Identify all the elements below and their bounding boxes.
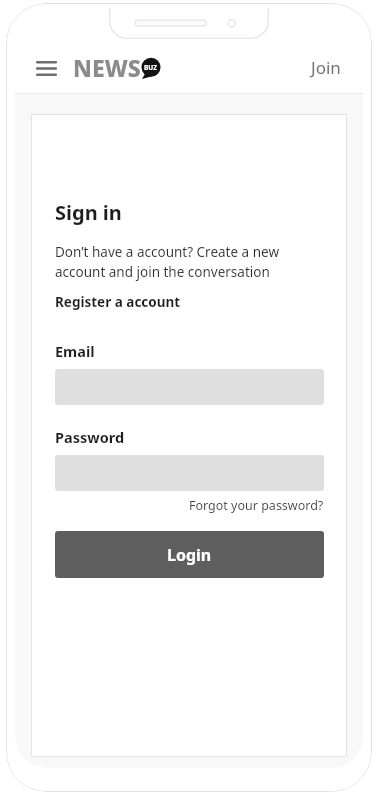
button[interactable]: Register a account xyxy=(55,293,181,311)
button[interactable]: Forgot your password? xyxy=(189,497,324,514)
staticText: Forgot your password? xyxy=(189,497,324,514)
staticText: Login xyxy=(167,544,212,566)
staticText: NEWS xyxy=(73,52,141,83)
staticText: Password xyxy=(55,427,125,447)
button[interactable]: Login xyxy=(55,531,324,578)
staticText: Email xyxy=(55,341,95,361)
staticText: Join xyxy=(311,56,341,79)
staticText: Register a account xyxy=(55,293,181,311)
staticText: BUZ xyxy=(144,63,158,72)
staticText: Sign in xyxy=(55,199,122,226)
button[interactable]: NEWS BUZ home xyxy=(73,52,161,83)
staticText: Don’t have a account? Create a new accou… xyxy=(55,243,279,281)
button[interactable]: Join xyxy=(305,48,347,87)
button[interactable]: Open navigation menu xyxy=(31,53,61,83)
